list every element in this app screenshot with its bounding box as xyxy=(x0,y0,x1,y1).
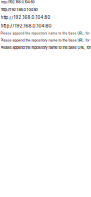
staticText: Please append the repository name to the… xyxy=(0,32,89,35)
staticText: Please append the repository name to the… xyxy=(0,38,89,42)
staticText: http://192.168.0.104:80 xyxy=(0,0,34,4)
staticText: http://192.168.0.104:80 xyxy=(0,15,50,20)
staticText: http://192.168.0.104:80 xyxy=(0,23,51,29)
staticText: Please append the repository name to the… xyxy=(0,45,90,50)
staticText: http://192.168.0.104:80 xyxy=(0,7,37,12)
